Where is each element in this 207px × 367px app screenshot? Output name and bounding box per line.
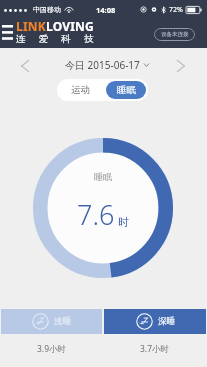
button[interactable]: 运动 bbox=[57, 79, 104, 101]
staticText: LINK bbox=[16, 18, 46, 34]
button[interactable]: 深睡 bbox=[104, 309, 206, 334]
staticText: 72% bbox=[169, 5, 183, 15]
staticText: 睡眠 bbox=[117, 84, 136, 96]
staticText: 今日 2015-06-17 bbox=[65, 58, 140, 72]
staticText: 睡眠 bbox=[94, 171, 112, 182]
button[interactable]: Previous day bbox=[14, 54, 36, 77]
staticText: 7.6 bbox=[77, 196, 115, 233]
staticText: 浅睡 bbox=[54, 316, 71, 327]
button[interactable]: Next day bbox=[170, 54, 192, 77]
button[interactable]: 浅睡 bbox=[1, 309, 102, 334]
staticText: 14:08 bbox=[96, 5, 116, 15]
button[interactable]: 设备未连接 bbox=[154, 28, 195, 41]
button[interactable]: 睡眠 bbox=[106, 81, 146, 99]
staticText: 运动 bbox=[71, 84, 90, 96]
staticText: 连 bbox=[16, 33, 26, 45]
staticText: 3.7小时 bbox=[140, 343, 170, 355]
staticText: 深睡 bbox=[158, 316, 175, 327]
staticText: 3.9小时 bbox=[37, 343, 67, 355]
staticText: 爱 bbox=[39, 33, 49, 45]
staticText: 中国移动 bbox=[33, 5, 61, 14]
button[interactable]: Menu bbox=[0, 21, 16, 43]
staticText: 设备未连接 bbox=[161, 31, 189, 38]
staticText: 科 bbox=[61, 33, 71, 45]
staticText: LOVING bbox=[46, 18, 94, 34]
staticText: 技 bbox=[84, 33, 94, 45]
staticText: 时 bbox=[118, 215, 129, 229]
